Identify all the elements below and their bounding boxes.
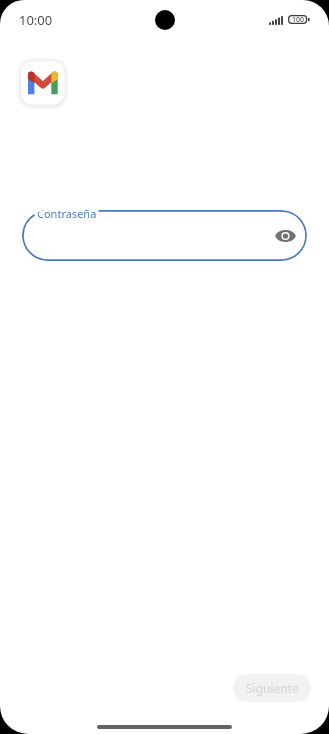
staticText: Siguiente xyxy=(246,680,299,696)
button[interactable]: Mostrar contraseña xyxy=(267,217,304,254)
staticText: 100 xyxy=(292,15,305,24)
button[interactable]: Siguiente xyxy=(233,674,311,702)
button[interactable]: Contraseña xyxy=(22,210,307,261)
staticText: Contraseña xyxy=(37,210,97,221)
staticText: 10:00 xyxy=(19,11,53,29)
